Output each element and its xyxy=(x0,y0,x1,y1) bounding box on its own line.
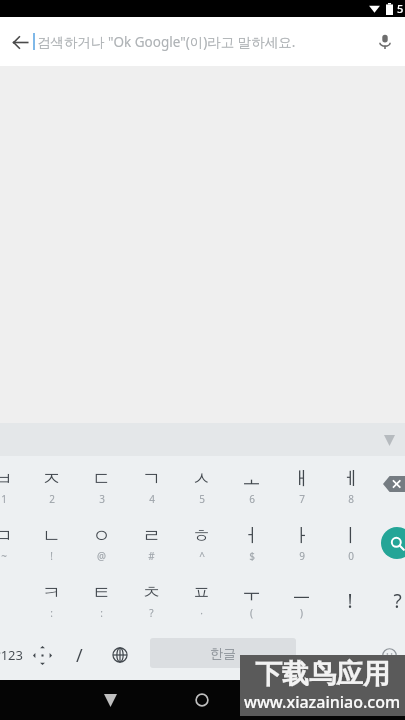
staticText: ㅏ xyxy=(292,524,311,548)
staticText: , xyxy=(315,644,320,667)
button[interactable]: ㅏ xyxy=(276,516,326,571)
staticText: ~ xyxy=(1,549,7,563)
staticText: ㅎ xyxy=(192,524,211,548)
staticText: ㅣ xyxy=(341,524,360,548)
staticText: # xyxy=(148,549,155,563)
staticText: ㅂ xyxy=(0,467,13,491)
button[interactable]: ㄹ xyxy=(126,516,176,571)
button[interactable]: Expand suggestions xyxy=(373,424,405,456)
button[interactable]: ㅔ xyxy=(325,459,375,514)
staticText: 검색하거나 "Ok Google"(이)라고 말하세요. xyxy=(37,33,296,51)
button[interactable]: ㅎ xyxy=(176,516,226,571)
button[interactable]: ㅊ xyxy=(126,573,176,628)
staticText: 한글 xyxy=(210,645,236,661)
button[interactable]: Hide keyboard xyxy=(86,680,134,720)
staticText: ^ xyxy=(199,549,205,563)
button[interactable]: ㅣ xyxy=(325,516,375,571)
staticText: ㄹ xyxy=(142,524,161,548)
button[interactable]: ㅁ xyxy=(0,516,28,571)
staticText: 7 xyxy=(299,492,305,506)
button[interactable]: ㅅ xyxy=(176,459,226,514)
staticText: ?123 xyxy=(0,646,23,664)
staticText: 4 xyxy=(149,492,155,506)
button[interactable]: ㅌ xyxy=(76,573,126,628)
staticText: ㅍ xyxy=(192,581,211,605)
button[interactable]: ㄱ xyxy=(126,459,176,514)
staticText: · xyxy=(200,606,203,620)
staticText: ( xyxy=(250,606,253,620)
staticText: 6 xyxy=(249,492,255,506)
button[interactable]: ㅗ xyxy=(226,459,276,514)
staticText: 0 xyxy=(348,549,354,563)
staticText: 9 xyxy=(299,549,305,563)
button[interactable]: ㅜ xyxy=(226,573,276,628)
button[interactable]: ㅐ xyxy=(276,459,326,514)
button[interactable]: ㅋ xyxy=(26,573,76,628)
staticText: ㅈ xyxy=(42,467,61,491)
staticText: 8 xyxy=(348,492,354,506)
button[interactable]: ㅍ xyxy=(176,573,226,628)
staticText: www.xiazainiao.com xyxy=(244,691,401,713)
staticText: : xyxy=(100,606,103,620)
button[interactable]: Change language xyxy=(95,632,145,678)
button[interactable]: ?123 xyxy=(0,632,34,678)
staticText: ㄴ xyxy=(42,524,61,548)
button[interactable]: / xyxy=(54,632,104,678)
button[interactable]: ㄷ xyxy=(76,459,126,514)
button[interactable]: ㅡ xyxy=(276,573,326,628)
button[interactable]: ㅇ xyxy=(76,516,126,571)
button[interactable]: ㄴ xyxy=(26,516,76,571)
staticText: ? xyxy=(393,588,402,614)
staticText: ㄷ xyxy=(92,467,111,491)
button[interactable]: Emoji xyxy=(382,632,405,678)
staticText: ㅓ xyxy=(242,524,261,548)
staticText: ㅅ xyxy=(192,467,211,491)
button[interactable]: . xyxy=(338,632,378,678)
button[interactable]: Cursor control xyxy=(17,632,67,678)
staticText: / xyxy=(76,643,83,668)
staticText: ㅁ xyxy=(0,524,13,548)
staticText: ㅌ xyxy=(92,581,111,605)
button[interactable]: Back xyxy=(0,22,40,62)
staticText: ㅡ xyxy=(292,581,311,605)
button[interactable]: 한글 xyxy=(150,638,296,668)
button[interactable]: ㅂ xyxy=(0,459,28,514)
staticText: 5 xyxy=(397,1,404,16)
button[interactable]: Home xyxy=(178,680,226,720)
staticText: ) xyxy=(300,606,303,620)
staticText: 3 xyxy=(99,492,105,506)
button[interactable]: ? xyxy=(372,573,405,628)
staticText: @ xyxy=(97,549,106,563)
staticText: ㅜ xyxy=(242,581,261,605)
staticText: ㅐ xyxy=(292,467,311,491)
button[interactable]: , xyxy=(296,632,338,678)
staticText: ? xyxy=(149,606,154,620)
staticText: ㅋ xyxy=(42,581,61,605)
button[interactable]: Voice search xyxy=(365,22,405,62)
button[interactable]: ㅓ xyxy=(226,516,276,571)
staticText: ㄱ xyxy=(142,467,161,491)
staticText: ㅔ xyxy=(341,467,360,491)
staticText: 1 xyxy=(1,492,7,506)
staticText: 2 xyxy=(49,492,55,506)
staticText: ! xyxy=(347,588,353,614)
button[interactable]: Backspace xyxy=(383,472,405,496)
button[interactable]: Search xyxy=(381,527,405,559)
staticText: 下载鸟应用 xyxy=(255,657,390,691)
staticText: ㅗ xyxy=(242,467,261,491)
staticText: : xyxy=(50,606,53,620)
button[interactable]: ! xyxy=(325,573,375,628)
button[interactable]: ㅈ xyxy=(26,459,76,514)
staticText: . xyxy=(356,644,361,667)
staticText: ! xyxy=(50,549,53,563)
staticText: $ xyxy=(249,549,255,563)
staticText: 5 xyxy=(199,492,205,506)
staticText: ㅇ xyxy=(92,524,111,548)
staticText: ㅊ xyxy=(142,581,161,605)
